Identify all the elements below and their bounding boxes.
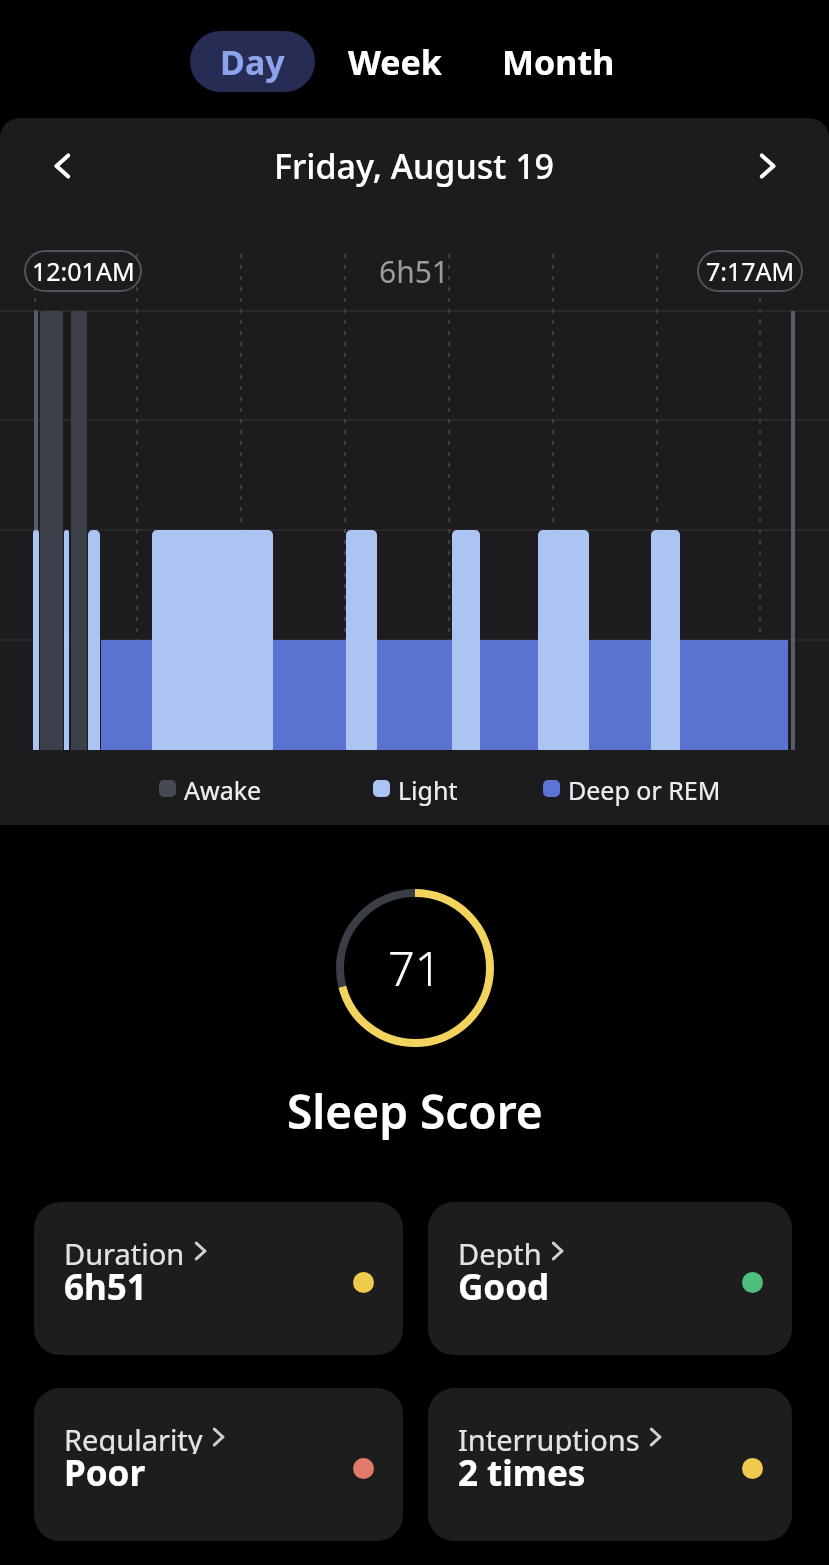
staticText: Regularity xyxy=(64,1420,203,1454)
button[interactable]: Day xyxy=(190,31,315,92)
staticText: Deep or REM xyxy=(568,773,721,807)
button[interactable]: Interruptions xyxy=(428,1388,792,1541)
staticText: Sleep Score xyxy=(287,1080,543,1140)
staticText: 6h51 xyxy=(379,251,450,292)
staticText: 71 xyxy=(388,936,442,1000)
button[interactable]: Duration xyxy=(34,1202,403,1355)
button[interactable]: Month xyxy=(493,31,624,92)
staticText: Poor xyxy=(64,1449,146,1497)
button[interactable]: Regularity xyxy=(34,1388,403,1541)
staticText: Friday, August 19 xyxy=(274,143,555,189)
staticText: Duration xyxy=(64,1234,185,1268)
button[interactable]: Week xyxy=(329,31,460,92)
staticText: 7:17AM xyxy=(706,254,795,288)
staticText: Depth xyxy=(458,1234,542,1268)
staticText: Interruptions xyxy=(458,1420,640,1454)
staticText: 2 times xyxy=(458,1449,586,1497)
staticText: Light xyxy=(398,773,458,807)
button[interactable] xyxy=(36,140,88,192)
staticText: 12:01AM xyxy=(32,254,135,288)
staticText: Good xyxy=(458,1263,550,1311)
staticText: Awake xyxy=(184,773,262,807)
staticText: Month xyxy=(502,39,615,85)
staticText: 6h51 xyxy=(64,1263,147,1311)
staticText: Week xyxy=(348,39,442,85)
button[interactable] xyxy=(741,140,793,192)
button[interactable]: Depth xyxy=(428,1202,792,1355)
staticText: Day xyxy=(220,39,285,85)
